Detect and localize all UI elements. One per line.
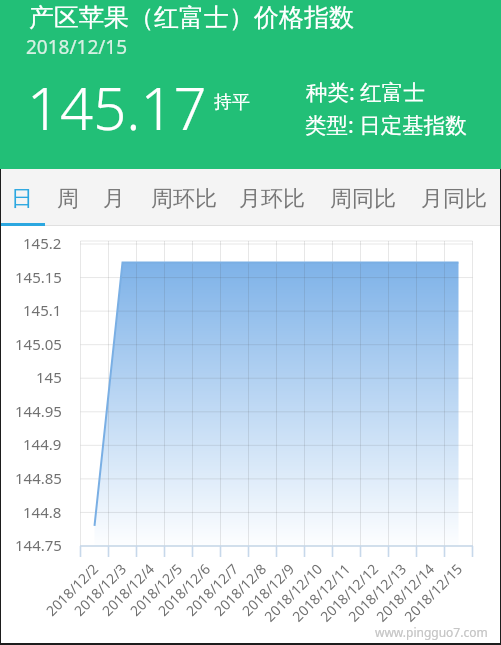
staticText: 周同比 — [330, 185, 396, 213]
staticText: 145.17 — [27, 68, 207, 147]
staticText: 持平 — [214, 91, 250, 114]
staticText: 2018/12/15 — [26, 34, 128, 60]
staticText: 月同比 — [421, 185, 487, 213]
staticText: 月 — [103, 185, 125, 213]
button[interactable]: 月 — [92, 177, 136, 221]
staticText: 周 — [57, 185, 79, 213]
staticText: 日 — [11, 185, 33, 213]
button[interactable]: 周 — [46, 177, 90, 221]
staticText: 产区苹果（红富士）价格指数 — [29, 2, 354, 33]
button[interactable]: 月同比 — [414, 177, 494, 221]
staticText: 种类: 红富士 — [306, 77, 425, 106]
button[interactable]: 周环比 — [144, 177, 224, 221]
button[interactable]: 日 — [0, 177, 44, 221]
staticText: 月环比 — [239, 185, 305, 213]
staticText: 类型: 日定基指数 — [305, 110, 467, 139]
button[interactable]: 月环比 — [232, 177, 312, 221]
staticText: 周环比 — [151, 185, 217, 213]
button[interactable]: 周同比 — [323, 177, 403, 221]
